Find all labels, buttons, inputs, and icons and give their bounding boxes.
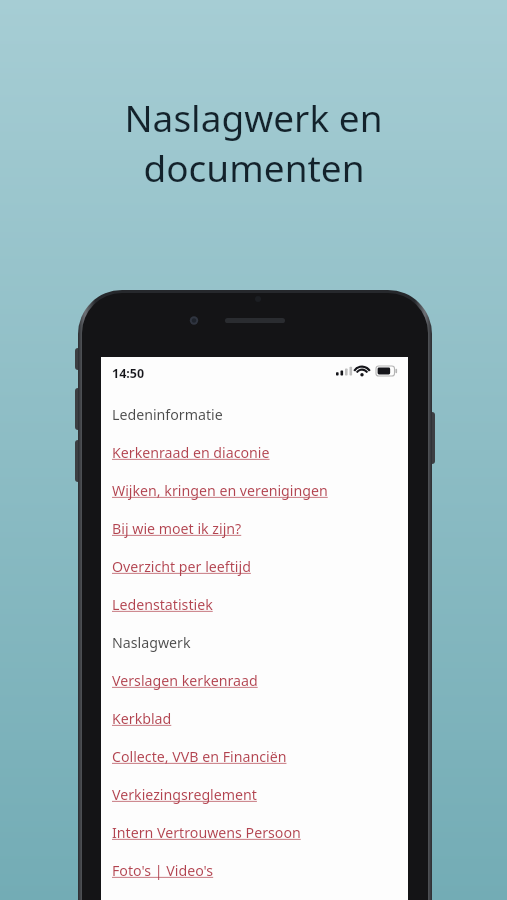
button[interactable]: Ledenstatistiek [101, 585, 213, 623]
staticText: Ledenstatistiek [112, 595, 213, 614]
button[interactable]: Wijken, kringen en verenigingen [101, 471, 328, 509]
button[interactable]: Intern Vertrouwens Persoon [101, 813, 301, 851]
button[interactable]: Foto's | Video's [101, 851, 214, 889]
staticText: Overzicht per leeftijd [112, 557, 251, 576]
staticText: documenten [143, 142, 365, 192]
staticText: Verkiezingsreglement [112, 785, 257, 804]
staticText: Kerkblad [112, 709, 172, 728]
staticText: 14:50 [112, 365, 145, 382]
staticText: Verslagen kerkenraad [112, 671, 258, 690]
staticText: Naslagwerk en [124, 92, 383, 142]
staticText: Collecte, VVB en Financiën [112, 747, 287, 766]
button[interactable]: Verslagen kerkenraad [101, 661, 258, 699]
staticText: Bij wie moet ik zijn? [112, 519, 242, 538]
button[interactable]: Verkiezingsreglement [101, 775, 257, 813]
staticText: Naslagwerk [112, 633, 191, 652]
button[interactable]: Overzicht per leeftijd [101, 547, 251, 585]
button[interactable]: Kerkenraad en diaconie [101, 433, 270, 471]
staticText: Ledeninformatie [112, 405, 223, 424]
staticText: Wijken, kringen en verenigingen [112, 481, 328, 500]
staticText: Kerkenraad en diaconie [112, 443, 270, 462]
button[interactable]: Kerkblad [101, 699, 172, 737]
button[interactable]: Collecte, VVB en Financiën [101, 737, 287, 775]
button[interactable]: Bij wie moet ik zijn? [101, 509, 242, 547]
staticText: Foto's | Video's [112, 861, 214, 880]
staticText: Intern Vertrouwens Persoon [112, 823, 301, 842]
